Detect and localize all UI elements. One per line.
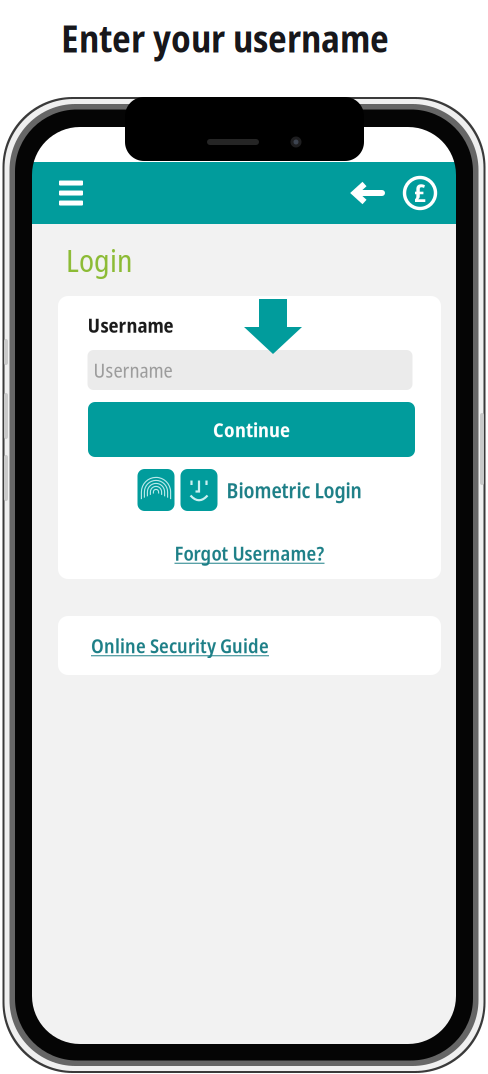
staticText: Biometric Login	[226, 475, 361, 505]
staticText: Continue	[213, 416, 290, 443]
button[interactable]: Accounts	[394, 162, 456, 224]
button[interactable]: Biometric Login	[137, 469, 361, 511]
button[interactable]: Menu	[32, 162, 97, 224]
button[interactable]: Forgot Username?	[149, 539, 349, 567]
staticText: Login	[66, 239, 132, 281]
staticText: Username	[87, 311, 173, 339]
staticText: £	[413, 175, 426, 210]
staticText: Username	[93, 356, 172, 384]
button[interactable]: Back	[342, 162, 394, 224]
staticText: Online Security Guide	[91, 632, 269, 659]
staticText: Enter your username	[61, 13, 389, 63]
staticText: Forgot Username?	[174, 539, 324, 567]
button[interactable]: Online Security Guide	[58, 616, 441, 675]
button[interactable]: Continue	[88, 402, 415, 457]
